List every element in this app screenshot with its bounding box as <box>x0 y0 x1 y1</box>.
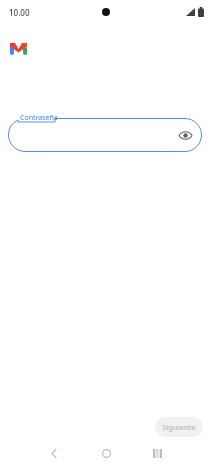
button[interactable]: Contraseña <box>8 110 202 152</box>
button[interactable]: Atrás <box>44 443 64 463</box>
staticText: 10.00 <box>9 7 30 18</box>
button[interactable]: Aplicaciones recientes <box>147 443 167 463</box>
button[interactable]: Inicio <box>96 443 116 463</box>
button[interactable]: Mostrar contraseña <box>176 126 194 144</box>
button[interactable]: Siguiente <box>155 417 203 437</box>
staticText: Contraseña <box>20 113 58 123</box>
staticText: Siguiente <box>162 422 196 432</box>
